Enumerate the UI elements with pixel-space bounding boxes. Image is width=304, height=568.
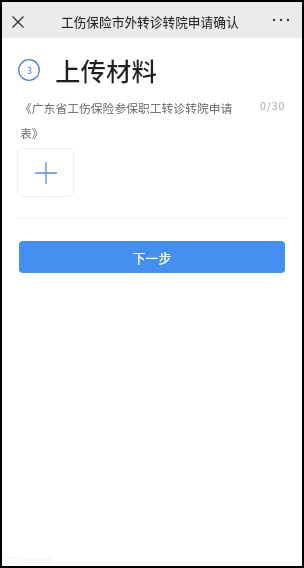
staticText: 小程序提供服务 — [17, 556, 53, 563]
button[interactable]: 下一步 — [19, 241, 285, 273]
button[interactable]: 更多 — [268, 7, 294, 33]
button[interactable]: 关闭 — [5, 9, 31, 35]
staticText: 上传材料 — [55, 51, 158, 88]
staticText: 《广东省工伤保险参保职工转诊转院申请表》 — [20, 99, 240, 141]
button[interactable]: 添加附件 — [17, 148, 74, 197]
staticText: 下一步 — [132, 248, 172, 267]
staticText: 工伤保险市外转诊转院申请确认 — [61, 12, 239, 30]
button[interactable]: 《广东省工伤保险参保职工转诊转院申请表》 — [2, 97, 302, 143]
staticText: 3 — [27, 64, 32, 77]
staticText: 0/30 — [260, 98, 286, 113]
